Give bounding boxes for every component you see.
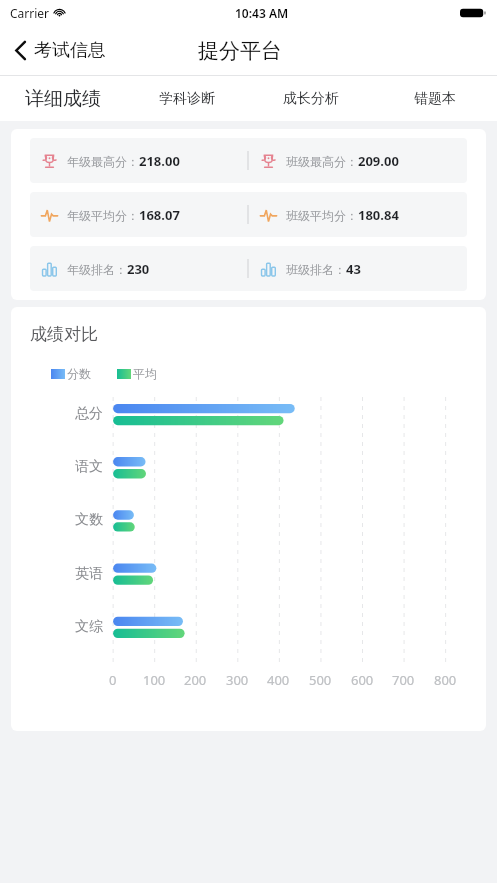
other: Highest score bbox=[41, 153, 58, 170]
staticText: Carrier bbox=[10, 5, 50, 21]
staticText: 200 bbox=[184, 671, 207, 689]
staticText: 43 bbox=[346, 260, 361, 278]
staticText: 文综 bbox=[75, 618, 103, 636]
other: Rank bbox=[41, 261, 58, 278]
staticText: 218.00 bbox=[139, 152, 180, 170]
other: Average score bbox=[41, 207, 58, 224]
button[interactable]: 成长分析 bbox=[249, 76, 373, 121]
staticText: 班级平均分： bbox=[286, 208, 358, 223]
staticText: 0 bbox=[109, 671, 117, 689]
staticText: 文数 bbox=[75, 511, 103, 529]
staticText: 成绩对比 bbox=[30, 324, 98, 345]
button[interactable]: 错题本 bbox=[373, 76, 497, 121]
staticText: 班级最高分： bbox=[286, 154, 358, 169]
other: Average score bbox=[260, 207, 277, 224]
staticText: 班级排名： bbox=[286, 262, 346, 277]
staticText: 168.07 bbox=[139, 206, 180, 224]
staticText: 180.84 bbox=[358, 206, 399, 224]
staticText: 100 bbox=[143, 671, 166, 689]
other: Highest score bbox=[260, 153, 277, 170]
button[interactable]: Rank bbox=[30, 246, 467, 291]
staticText: 500 bbox=[309, 671, 332, 689]
staticText: 学科诊断 bbox=[159, 90, 215, 108]
staticText: 700 bbox=[392, 671, 415, 689]
staticText: 600 bbox=[351, 671, 374, 689]
staticText: 错题本 bbox=[414, 90, 456, 108]
staticText: 平均 bbox=[133, 366, 157, 381]
staticText: 语文 bbox=[75, 458, 103, 476]
other: Back bbox=[14, 40, 27, 61]
button[interactable]: Average score bbox=[30, 192, 467, 237]
staticText: 年级最高分： bbox=[67, 154, 139, 169]
staticText: 成长分析 bbox=[283, 90, 339, 108]
staticText: 考试信息 bbox=[34, 39, 106, 62]
staticText: 400 bbox=[267, 671, 290, 689]
staticText: 800 bbox=[434, 671, 457, 689]
staticText: 230 bbox=[127, 260, 150, 278]
staticText: 总分 bbox=[75, 405, 103, 423]
staticText: 分数 bbox=[67, 366, 91, 381]
button[interactable]: 详细成绩 bbox=[0, 76, 125, 121]
other: Rank bbox=[260, 261, 277, 278]
button[interactable]: 学科诊断 bbox=[125, 76, 249, 121]
staticText: 年级平均分： bbox=[67, 208, 139, 223]
button[interactable]: Back bbox=[0, 31, 118, 70]
staticText: 10:43 AM bbox=[235, 5, 289, 21]
staticText: 详细成绩 bbox=[25, 87, 101, 111]
staticText: 英语 bbox=[75, 565, 103, 583]
staticText: 300 bbox=[226, 671, 249, 689]
staticText: 209.00 bbox=[358, 152, 399, 170]
staticText: 年级排名： bbox=[67, 262, 127, 277]
button[interactable]: Highest score bbox=[30, 138, 467, 183]
staticText: 提分平台 bbox=[198, 38, 282, 64]
